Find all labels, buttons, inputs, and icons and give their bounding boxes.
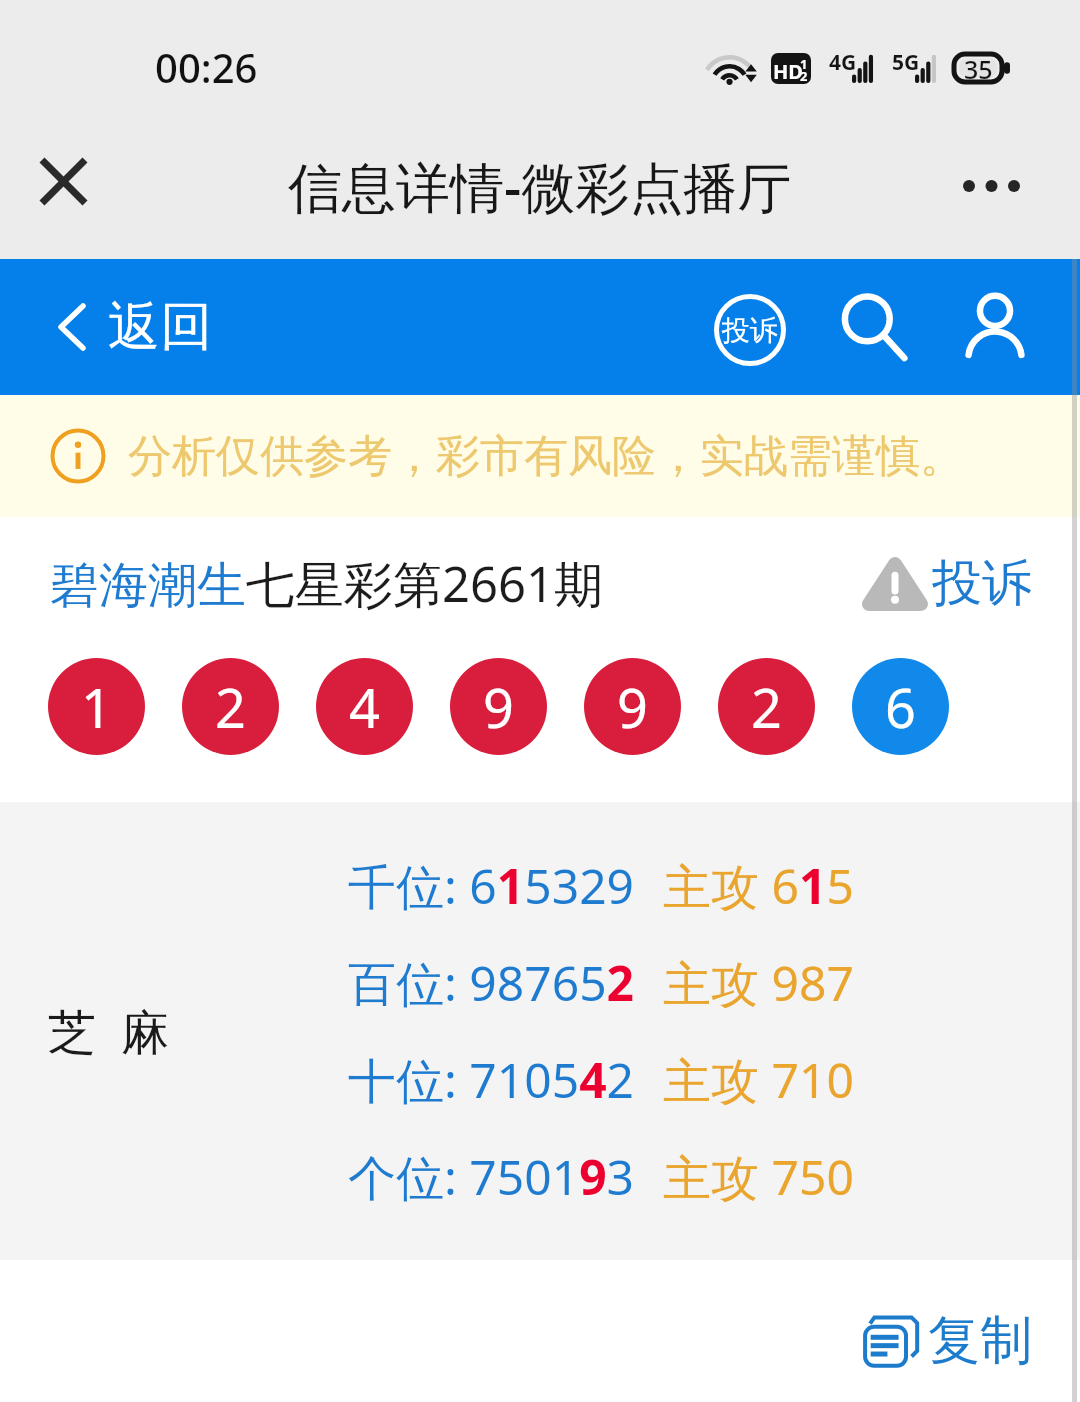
button[interactable]: 1 <box>48 658 145 755</box>
staticText: 2 <box>800 67 808 84</box>
button[interactable]: Close <box>26 144 100 218</box>
button[interactable]: 6 <box>852 658 949 755</box>
staticText: 00:26 <box>155 40 258 94</box>
button[interactable]: 2 <box>718 658 815 755</box>
button[interactable]: 碧海潮生七星彩第2661期 <box>0 550 604 617</box>
button[interactable]: 十位: 710542 <box>348 1047 854 1113</box>
staticText: 4 <box>349 670 380 744</box>
staticText: 个位: 750193 <box>348 1144 635 1210</box>
staticText: 2 <box>215 670 246 744</box>
button[interactable]: 9 <box>450 658 547 755</box>
button[interactable]: 百位: 987652 <box>348 950 854 1016</box>
button[interactable]: More options <box>954 149 1028 223</box>
staticText: 分析仅供参考，彩市有风险，实战需谨慎。 <box>128 429 964 484</box>
button[interactable]: 2 <box>182 658 279 755</box>
staticText: 芝 麻 <box>48 998 169 1064</box>
staticText: 千位: 615329 <box>348 853 635 919</box>
staticText: 9 <box>617 670 648 744</box>
staticText: 1 <box>81 670 112 744</box>
staticText: 复制 <box>928 1308 1032 1374</box>
button[interactable]: Profile <box>954 287 1036 369</box>
staticText: 主攻 750 <box>663 1144 854 1210</box>
staticText: 35 <box>964 52 993 84</box>
button[interactable]: 投诉 <box>862 552 1032 615</box>
staticText: 十位: 710542 <box>348 1047 635 1113</box>
button[interactable]: Back <box>57 294 212 360</box>
staticText: 投诉 <box>722 313 778 348</box>
button[interactable]: 千位: 615329 <box>348 853 854 919</box>
staticText: 9 <box>483 670 514 744</box>
staticText: 信息详情-微彩点播厅 <box>288 149 792 223</box>
staticText: 主攻 710 <box>663 1047 854 1113</box>
button[interactable]: Complaint <box>707 287 793 373</box>
button[interactable]: 9 <box>584 658 681 755</box>
staticText: 5G <box>892 48 920 77</box>
staticText: 返回 <box>108 294 212 360</box>
button[interactable]: 复制 <box>862 1308 1032 1374</box>
staticText: 2 <box>751 670 782 744</box>
button[interactable]: 4 <box>316 658 413 755</box>
staticText: HD <box>773 58 803 84</box>
staticText: 主攻 615 <box>663 853 854 919</box>
staticText: 主攻 987 <box>663 950 854 1016</box>
staticText: 百位: 987652 <box>348 950 635 1016</box>
button[interactable]: Search <box>834 287 916 369</box>
staticText: 投诉 <box>932 552 1032 615</box>
button[interactable]: 个位: 750193 <box>348 1144 854 1210</box>
staticText: 4G <box>829 48 857 77</box>
staticText: 1 <box>800 55 808 73</box>
staticText: 6 <box>885 670 916 744</box>
